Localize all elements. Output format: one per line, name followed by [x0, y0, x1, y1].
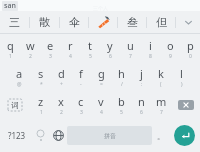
staticText: 散 [39, 15, 50, 29]
button[interactable]: i [140, 34, 160, 63]
button[interactable]: q [0, 34, 20, 63]
button[interactable]: p [180, 34, 200, 63]
button[interactable]: w [20, 34, 40, 63]
staticText: m [156, 94, 167, 109]
staticText: ) [181, 81, 183, 88]
staticText: 0 [189, 53, 192, 60]
staticText: 伞 [69, 15, 80, 29]
staticText: k [158, 66, 164, 81]
staticText: 3 [80, 109, 83, 116]
staticText: - [80, 81, 82, 88]
staticText: x [58, 94, 64, 109]
button[interactable]: v [91, 91, 111, 119]
button[interactable]: o [160, 34, 180, 63]
staticText: e [47, 38, 54, 53]
button[interactable]: 伞 [60, 11, 88, 33]
staticText: n [138, 94, 145, 109]
staticText: : [141, 81, 143, 88]
staticText: 5 [120, 109, 123, 116]
staticText: 4 [100, 109, 103, 116]
staticText: r [68, 38, 73, 53]
staticText: a [16, 66, 23, 81]
staticText: d [58, 66, 65, 81]
button[interactable]: 。 [152, 119, 170, 152]
staticText: 6 [140, 109, 143, 116]
staticText: z [38, 94, 44, 109]
staticText: / [121, 81, 123, 88]
staticText: 但 [156, 15, 167, 29]
staticText: 8 [149, 53, 152, 60]
staticText: p [187, 38, 194, 53]
staticText: i [149, 38, 152, 53]
staticText: ?123 [8, 130, 26, 141]
button[interactable]: 拼音 [67, 126, 152, 145]
button[interactable]: san [2, 1, 18, 11]
button[interactable]: l [171, 63, 191, 91]
button[interactable]: h [111, 63, 131, 91]
button[interactable]: More candidates [176, 11, 200, 33]
staticText: c [78, 94, 84, 109]
button[interactable]: 三 [0, 11, 29, 33]
staticText: 词 [11, 100, 19, 110]
button[interactable]: 叁 [118, 11, 146, 33]
staticText: san [4, 1, 16, 11]
button[interactable] [89, 11, 117, 33]
staticText: ( [160, 81, 162, 88]
button[interactable]: n [131, 91, 151, 119]
staticText: f [79, 66, 83, 81]
staticText: q [7, 38, 14, 53]
staticText: o [167, 38, 174, 53]
button[interactable]: e [40, 34, 60, 63]
button[interactable]: x [51, 91, 71, 119]
button[interactable]: a [9, 63, 30, 91]
button[interactable]: ?123 [2, 119, 31, 152]
staticText: 9 [169, 53, 172, 60]
button[interactable]: f [71, 63, 91, 91]
staticText: 2 [60, 109, 63, 116]
staticText: h [118, 66, 125, 81]
staticText: 三 [9, 15, 20, 29]
button[interactable]: u [120, 34, 140, 63]
staticText: 7 [129, 53, 132, 60]
staticText: * [40, 81, 43, 88]
button[interactable]: Word mode [0, 91, 30, 119]
staticText: l [180, 66, 183, 81]
staticText: g [98, 66, 105, 81]
button[interactable]: y [100, 34, 120, 63]
staticText: t [88, 38, 92, 53]
button[interactable]: t [80, 34, 100, 63]
staticText: j [140, 66, 143, 81]
staticText: 1 [9, 53, 12, 60]
staticText: 6 [109, 53, 112, 60]
button[interactable]: d [51, 63, 71, 91]
staticText: v [98, 94, 104, 109]
staticText: u [127, 38, 134, 53]
button[interactable]: Emoji [31, 119, 49, 152]
button[interactable]: Backspace [171, 91, 200, 119]
staticText: w [26, 38, 35, 53]
staticText: b [118, 94, 125, 109]
button[interactable]: r [60, 34, 80, 63]
button[interactable]: b [111, 91, 131, 119]
button[interactable]: k [151, 63, 171, 91]
staticText: 3 [49, 53, 52, 60]
staticText: = [100, 81, 103, 88]
button[interactable]: Enter [170, 119, 198, 152]
button[interactable]: 散 [30, 11, 59, 33]
staticText: 叁 [127, 15, 138, 29]
button[interactable]: m [151, 91, 171, 119]
staticText: 4 [69, 53, 72, 60]
staticText: + [60, 81, 63, 88]
staticText: 7 [160, 109, 163, 116]
staticText: 5 [89, 53, 92, 60]
button[interactable]: j [131, 63, 151, 91]
button[interactable]: z [30, 91, 51, 119]
button[interactable]: g [91, 63, 111, 91]
staticText: y [107, 38, 113, 53]
button[interactable]: 但 [147, 11, 175, 33]
button[interactable]: s [30, 63, 51, 91]
staticText: 。 [157, 131, 165, 141]
button[interactable]: c [71, 91, 91, 119]
button[interactable]: Change language [49, 119, 67, 152]
